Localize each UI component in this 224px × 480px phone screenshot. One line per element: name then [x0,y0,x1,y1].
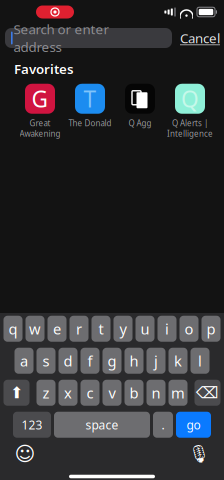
button[interactable]: Emoji [12,441,38,467]
button[interactable]: Search or enter address [5,28,172,48]
staticText: Q [181,84,199,114]
staticText: t [98,319,103,338]
staticText: j [154,351,158,370]
button[interactable]: q [3,316,22,342]
button[interactable]: Cancel [180,28,220,48]
staticText: Search or enter address [14,20,110,56]
staticText: ⌫ [196,384,219,402]
button[interactable]: s [36,348,55,374]
button[interactable]: 123 [13,412,51,438]
button[interactable]: T [65,84,115,136]
button[interactable]: l [190,348,209,374]
staticText: e [53,319,61,338]
staticText: s [42,351,49,370]
staticText: g [107,351,116,370]
button[interactable]: Q Agg [115,84,165,136]
button[interactable]: z [36,380,55,406]
button[interactable]: w [25,316,44,342]
button[interactable]: x [58,380,77,406]
staticText: b [129,383,138,402]
staticText: T [83,84,96,114]
staticText: The Donald [68,118,111,128]
button[interactable]: . [153,412,173,438]
button[interactable]: h [124,348,143,374]
button[interactable]: t [91,316,110,342]
staticText: Cancel [180,29,220,47]
button[interactable]: p [201,316,220,342]
button[interactable]: i [157,316,176,342]
staticText: Favorites [14,60,74,78]
button[interactable]: g [102,348,121,374]
staticText: q [8,319,17,338]
staticText: v [108,383,115,402]
staticText: w [29,319,41,338]
staticText: z [42,383,49,402]
button[interactable]: a [14,348,33,374]
button[interactable]: n [146,380,165,406]
button[interactable]: k [168,348,187,374]
staticText: f [87,351,92,370]
button[interactable]: space [54,412,150,438]
staticText: Q Agg [128,118,151,128]
staticText: space [85,417,118,433]
staticText: c [86,383,93,402]
staticText: ⬆ [10,384,23,402]
staticText: . [161,417,164,433]
button[interactable]: G [15,84,65,136]
staticText: x [64,383,72,402]
button[interactable]: Q [165,84,215,136]
staticText: o [184,319,193,338]
staticText: Great [29,118,50,128]
button[interactable]: b [124,380,143,406]
button[interactable]: f [80,348,99,374]
button[interactable]: r [69,316,88,342]
button[interactable]: y [113,316,132,342]
button[interactable]: m [168,380,187,406]
staticText: y [119,319,126,338]
staticText: ☺ [14,442,35,465]
button[interactable]: Delete [194,380,220,406]
staticText: r [76,319,82,338]
button[interactable]: o [179,316,198,342]
staticText: p [206,319,215,338]
staticText: n [151,383,160,402]
staticText: k [174,351,182,370]
button[interactable]: u [135,316,154,342]
button[interactable]: Dictate [186,441,212,467]
button[interactable]: e [47,316,66,342]
staticText: h [129,351,138,370]
button[interactable]: j [146,348,165,374]
button[interactable]: d [58,348,77,374]
staticText: l [198,351,202,370]
staticText: Intelligence [167,128,213,139]
staticText: G [31,84,48,114]
button[interactable]: Shift [3,380,29,406]
staticText: 123 [21,417,42,433]
button[interactable]: go [176,412,211,438]
staticText: 🎙 [188,444,210,464]
staticText: i [165,319,169,338]
staticText: d [63,351,72,370]
staticText: u [140,319,149,338]
staticText: Q Alerts | [172,118,208,128]
staticText: go [186,417,200,433]
button[interactable]: c [80,380,99,406]
staticText: Awakening [19,128,60,139]
staticText: a [20,351,28,370]
staticText: m [171,383,185,402]
button[interactable]: v [102,380,121,406]
